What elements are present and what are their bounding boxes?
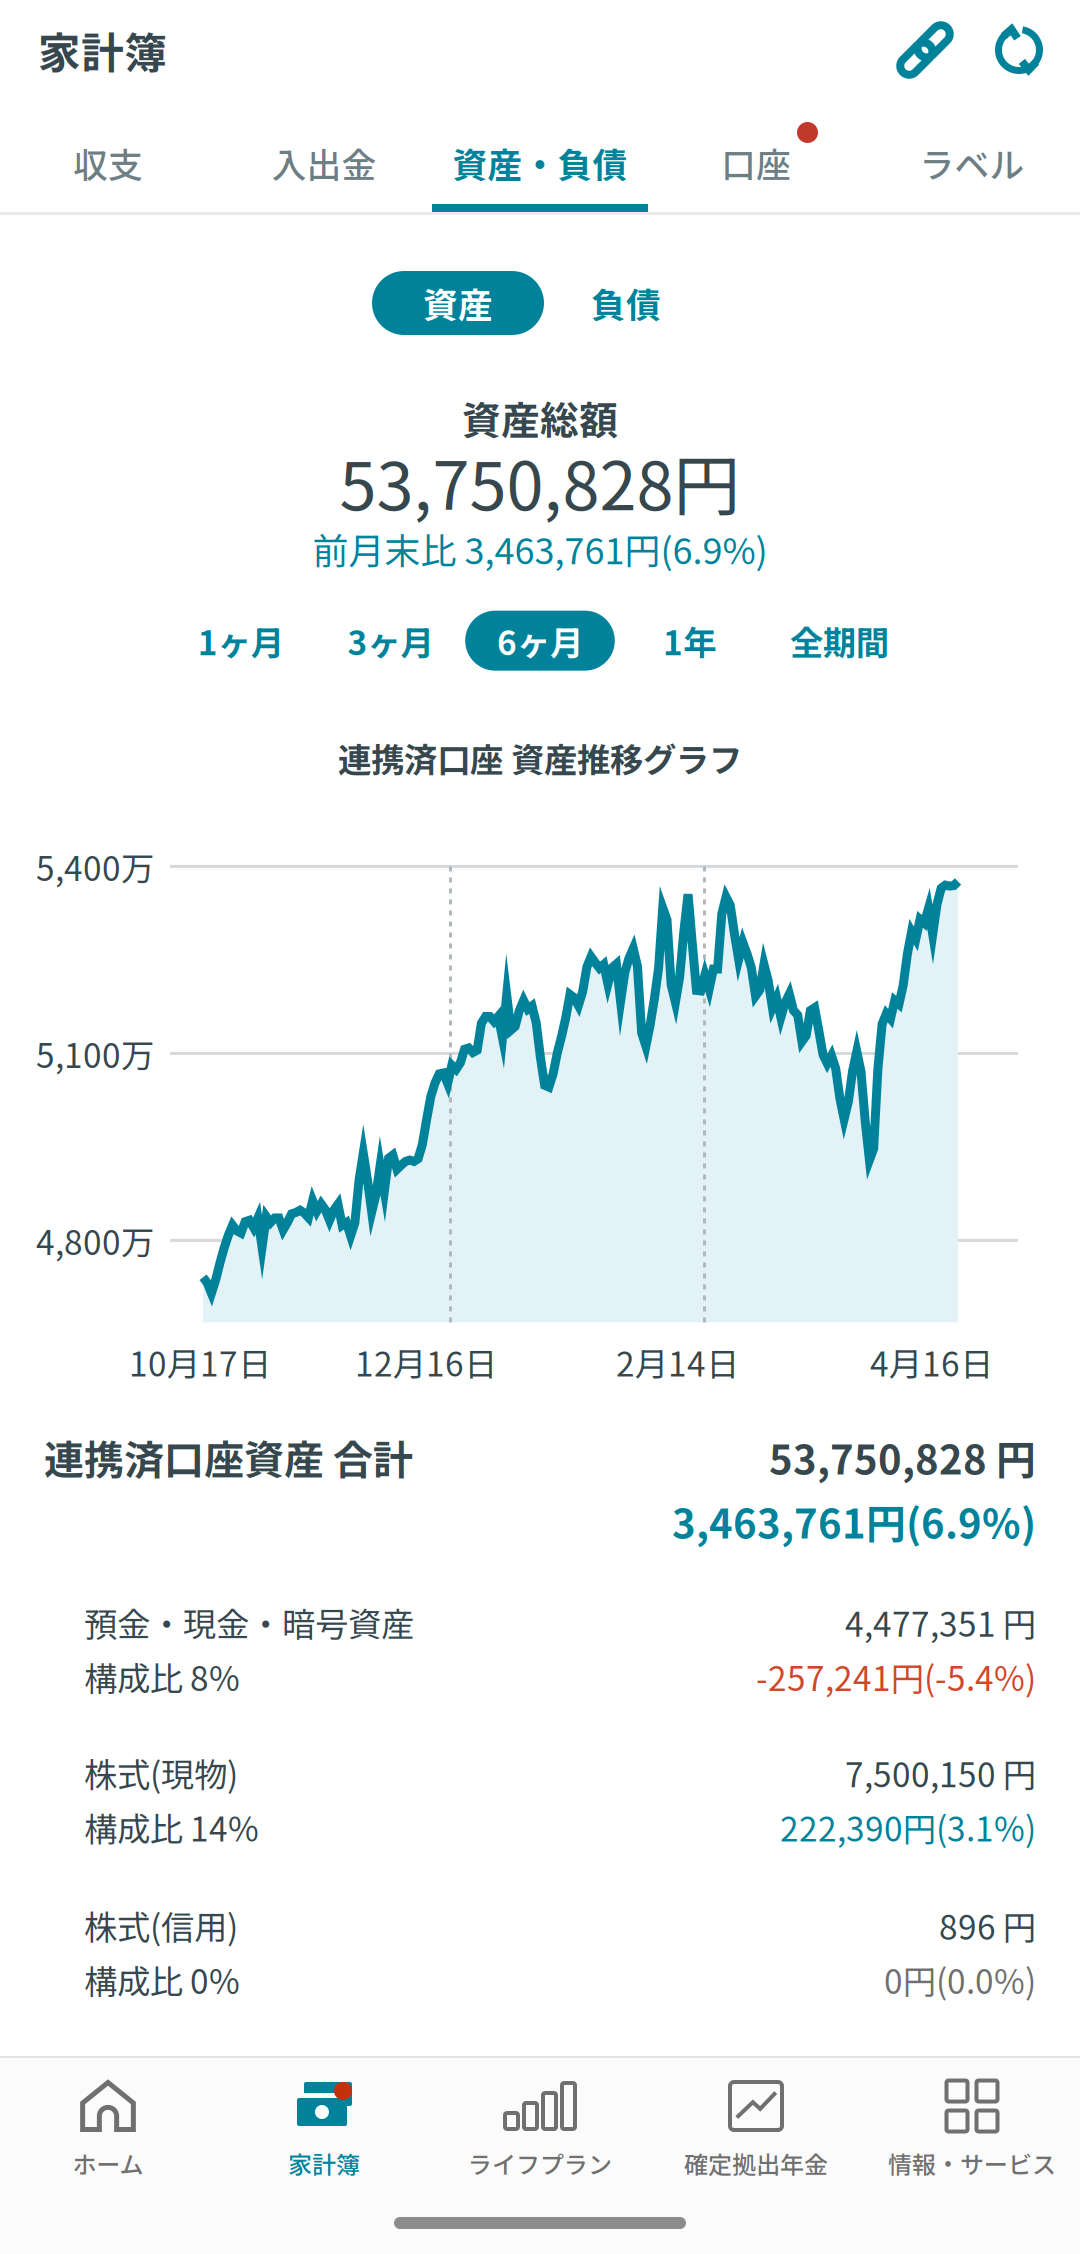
staticText: 家計簿 bbox=[288, 2146, 360, 2181]
staticText: 53,750,828 円 bbox=[769, 1428, 1036, 1486]
staticText: 前月末比 3,463,761円(6.9%) bbox=[312, 522, 767, 575]
staticText: 7,500,150 円 bbox=[845, 1749, 1036, 1797]
staticText: 3ヶ月 bbox=[347, 616, 433, 665]
staticText: 収支 bbox=[73, 138, 143, 188]
staticText: 情報・サービス bbox=[888, 2146, 1056, 2181]
button[interactable]: 株式(信用) bbox=[0, 1851, 1080, 2004]
staticText: 5,400万 bbox=[36, 842, 154, 891]
button[interactable]: 情報・サービス bbox=[864, 2080, 1080, 2196]
button[interactable]: 3ヶ月 bbox=[316, 611, 465, 671]
staticText: 4,477,351 円 bbox=[845, 1598, 1036, 1646]
button[interactable]: 投資信託 bbox=[0, 2004, 1080, 2102]
button[interactable]: 1ヶ月 bbox=[166, 611, 316, 671]
button[interactable]: 6ヶ月 bbox=[465, 611, 615, 671]
button[interactable]: 株式(現物) bbox=[0, 1701, 1080, 1851]
staticText: 資産 bbox=[423, 278, 493, 328]
staticText: 家計簿 bbox=[38, 19, 167, 81]
staticText: 4,800万 bbox=[36, 1216, 154, 1265]
staticText: 投資信託 bbox=[84, 2054, 216, 2102]
staticText: 222,390円(3.1%) bbox=[780, 1803, 1036, 1851]
staticText: ラベル bbox=[919, 138, 1024, 188]
staticText: -257,241円(-5.4%) bbox=[756, 1652, 1036, 1701]
button[interactable]: 全期間 bbox=[764, 611, 914, 671]
button[interactable]: ホーム bbox=[0, 2080, 216, 2196]
staticText: 1ヶ月 bbox=[198, 616, 284, 665]
button[interactable]: 資産 bbox=[372, 271, 544, 335]
staticText: 53,750,828円 bbox=[339, 433, 740, 529]
staticText: 4月16日 bbox=[870, 1338, 993, 1386]
button[interactable]: ラベル bbox=[864, 100, 1080, 212]
staticText: 口座 bbox=[721, 138, 791, 188]
button[interactable]: 収支 bbox=[0, 100, 216, 212]
staticText: 896 円 bbox=[939, 1901, 1036, 1949]
staticText: ホーム bbox=[72, 2146, 143, 2181]
staticText: 資産・負債 bbox=[452, 138, 627, 188]
staticText: 12月16日 bbox=[355, 1338, 497, 1386]
staticText: 負債 bbox=[591, 278, 661, 328]
staticText: 3,463,761円(6.9%) bbox=[672, 1492, 1036, 1550]
button[interactable]: 入出金 bbox=[216, 100, 432, 212]
staticText: 全期間 bbox=[790, 616, 889, 665]
button[interactable]: 1年 bbox=[615, 611, 764, 671]
staticText: 株式(信用) bbox=[84, 1901, 238, 1949]
staticText: 2月14日 bbox=[616, 1338, 739, 1386]
button[interactable]: 口座 bbox=[648, 100, 864, 212]
staticText: 5,100万 bbox=[36, 1029, 154, 1078]
staticText: 10月17日 bbox=[129, 1338, 271, 1386]
staticText: 6ヶ月 bbox=[497, 616, 583, 665]
button[interactable]: 口座連携 bbox=[878, 9, 972, 91]
staticText: 構成比 8% bbox=[84, 1652, 240, 1701]
staticText: ライフプラン bbox=[468, 2146, 612, 2181]
button[interactable]: 確定拠出年金 bbox=[648, 2080, 864, 2196]
staticText: 1年 bbox=[663, 616, 716, 665]
staticText: 預金・現金・暗号資産 bbox=[84, 1598, 414, 1646]
button[interactable]: ライフプラン bbox=[432, 2080, 648, 2196]
button[interactable]: 家計簿 bbox=[216, 2080, 432, 2196]
staticText: 構成比 14% bbox=[84, 1803, 259, 1851]
button[interactable]: 更新 bbox=[972, 9, 1066, 91]
staticText: 41,768,678 円 bbox=[826, 2054, 1036, 2102]
staticText: 入出金 bbox=[271, 138, 376, 188]
staticText: 株式(現物) bbox=[84, 1749, 238, 1797]
staticText: 確定拠出年金 bbox=[684, 2146, 828, 2181]
button[interactable]: 負債 bbox=[544, 271, 708, 335]
staticText: 資産総額 bbox=[462, 390, 618, 446]
staticText: 構成比 0% bbox=[84, 1955, 240, 2004]
staticText: 連携済口座資産 合計 bbox=[44, 1428, 413, 1486]
button[interactable]: 資産・負債 bbox=[432, 100, 648, 212]
button[interactable]: 預金・現金・暗号資産 bbox=[0, 1550, 1080, 1700]
staticText: 0円(0.0%) bbox=[884, 1955, 1036, 2004]
staticText: 連携済口座 資産推移グラフ bbox=[338, 734, 742, 782]
